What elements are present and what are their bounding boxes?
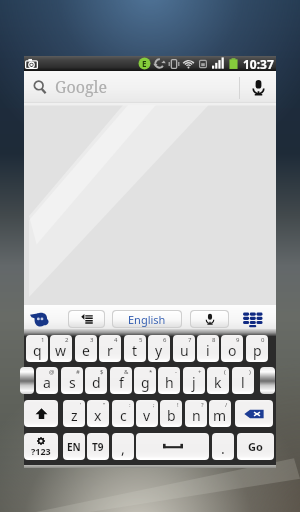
button[interactable]: g	[134, 367, 156, 394]
button[interactable]: Backspace	[235, 400, 273, 427]
staticText: !	[177, 401, 179, 409]
button[interactable]: o	[221, 335, 243, 362]
button[interactable]: Shift	[24, 400, 58, 427]
button[interactable]: r	[99, 335, 121, 362]
button[interactable]: u	[173, 335, 195, 362]
button[interactable]: k	[207, 367, 229, 394]
staticText: *	[149, 368, 153, 376]
staticText: g	[141, 373, 150, 392]
button[interactable]: More	[20, 367, 34, 394]
staticText: +	[198, 368, 202, 376]
staticText: y	[155, 341, 163, 360]
staticText: 9	[236, 336, 240, 344]
staticText: k	[214, 373, 222, 392]
staticText: d	[92, 373, 101, 392]
staticText: ;	[153, 401, 155, 409]
button[interactable]: Google	[24, 71, 276, 104]
staticText: m	[213, 406, 227, 425]
staticText: T9	[92, 440, 104, 454]
staticText: ?123	[31, 445, 51, 457]
staticText: z	[71, 406, 78, 425]
staticText: x	[94, 406, 102, 425]
button[interactable]: i	[197, 335, 219, 362]
staticText: EN	[67, 440, 81, 454]
button[interactable]: a	[36, 367, 58, 394]
staticText: 2	[65, 336, 69, 344]
button[interactable]: h	[158, 367, 180, 394]
button[interactable]: x	[87, 400, 109, 427]
staticText: Go	[248, 439, 263, 454]
staticText: 6	[163, 336, 167, 344]
staticText: o	[228, 341, 237, 360]
staticText: s	[69, 373, 76, 392]
staticText: /	[225, 401, 228, 409]
staticText: 5	[139, 336, 143, 344]
button[interactable]: j	[183, 367, 205, 394]
button[interactable]: English	[113, 311, 181, 327]
staticText: 7	[188, 336, 192, 344]
staticText: &	[124, 368, 129, 376]
button[interactable]: c	[112, 400, 134, 427]
button[interactable]: y	[148, 335, 170, 362]
button[interactable]: Space	[136, 433, 209, 460]
button[interactable]: q	[26, 335, 48, 362]
button[interactable]: ,	[112, 433, 134, 460]
staticText: )	[249, 368, 251, 376]
staticText: 3	[90, 336, 94, 344]
staticText: a	[43, 373, 51, 392]
staticText: 8	[212, 336, 216, 344]
button[interactable]: v	[136, 400, 158, 427]
staticText: w	[55, 341, 67, 360]
staticText: l	[241, 373, 245, 392]
staticText: r	[107, 341, 113, 360]
staticText: Google	[55, 76, 108, 98]
staticText: i	[206, 341, 210, 360]
button[interactable]: s	[61, 367, 83, 394]
staticText: v	[143, 406, 151, 425]
button[interactable]: Voice input	[191, 311, 228, 327]
button[interactable]: Go	[237, 433, 274, 460]
button[interactable]: m	[209, 400, 231, 427]
staticText: f	[119, 373, 124, 392]
button[interactable]: b	[160, 400, 182, 427]
button[interactable]: n	[185, 400, 207, 427]
staticText: q	[33, 341, 42, 360]
button[interactable]: Settings	[69, 311, 104, 327]
staticText: j	[192, 373, 196, 392]
button[interactable]: d	[85, 367, 107, 394]
staticText: p	[253, 341, 262, 360]
staticText: u	[180, 341, 189, 360]
button[interactable]: T9 input	[87, 433, 109, 460]
button[interactable]: f	[110, 367, 132, 394]
button[interactable]: t	[124, 335, 146, 362]
staticText: E	[142, 58, 147, 69]
staticText: 4	[114, 336, 118, 344]
staticText: #	[76, 368, 80, 376]
button[interactable]: Language	[63, 433, 85, 460]
button[interactable]: z	[63, 400, 85, 427]
staticText: -	[175, 368, 177, 376]
button[interactable]: e	[75, 335, 97, 362]
staticText: t	[132, 341, 138, 360]
staticText: h	[165, 373, 174, 392]
staticText: b	[167, 406, 176, 425]
button[interactable]: Voice search	[240, 71, 276, 104]
staticText: .	[221, 439, 225, 458]
button[interactable]: More	[260, 367, 275, 394]
button[interactable]: w	[50, 335, 72, 362]
staticText: c	[120, 406, 127, 425]
staticText: 1	[41, 336, 45, 344]
button[interactable]: .	[212, 433, 234, 460]
button[interactable]: GO Keyboard menu	[29, 308, 50, 329]
button[interactable]: p	[246, 335, 268, 362]
staticText: n	[192, 406, 201, 425]
staticText: (	[224, 368, 226, 376]
staticText: :	[129, 401, 131, 409]
staticText: e	[82, 341, 90, 360]
staticText: "	[103, 401, 106, 409]
staticText: ,	[121, 439, 125, 458]
staticText: ?	[201, 401, 204, 409]
button[interactable]: Symbols	[24, 433, 58, 460]
button[interactable]: l	[232, 367, 254, 394]
button[interactable]: Keypad	[241, 310, 263, 327]
